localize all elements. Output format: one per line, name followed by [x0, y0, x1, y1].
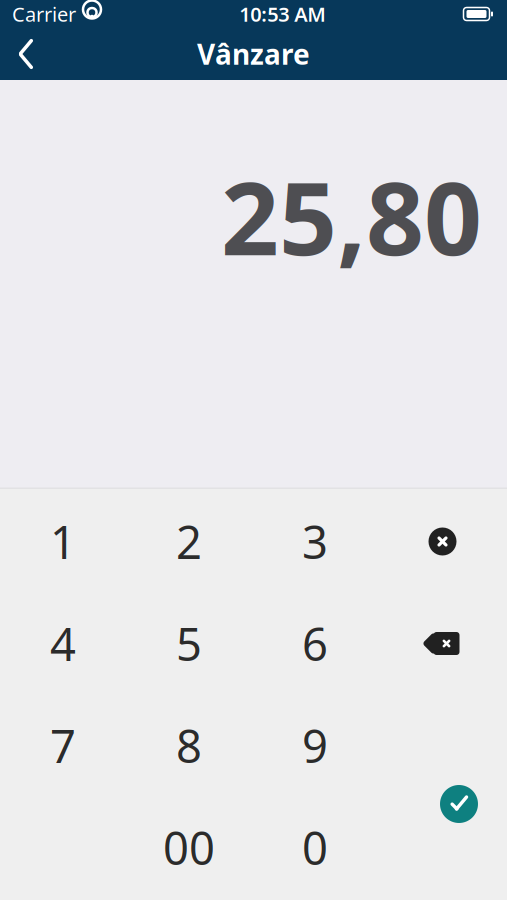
button[interactable]: 00 — [126, 796, 252, 898]
staticText: 00 — [163, 817, 215, 878]
button[interactable]: 8 — [126, 694, 252, 796]
staticText: 9 — [302, 715, 328, 776]
button[interactable]: Back — [0, 28, 52, 80]
staticText: 4 — [50, 613, 76, 674]
staticText: 10:53 AM — [239, 1, 326, 27]
button[interactable]: 6 — [252, 592, 378, 694]
button[interactable]: 0 — [252, 796, 378, 898]
staticText: 25,80 — [221, 149, 482, 283]
staticText: Vânzare — [197, 35, 310, 73]
button[interactable]: Backspace — [394, 610, 490, 676]
staticText: 2 — [176, 511, 202, 572]
button[interactable]: 4 — [0, 592, 126, 694]
button[interactable]: 5 — [126, 592, 252, 694]
staticText: 8 — [176, 715, 202, 776]
button[interactable]: 9 — [252, 694, 378, 796]
button[interactable]: 1 — [0, 490, 126, 592]
button[interactable]: Clear — [394, 508, 490, 574]
button[interactable]: 7 — [0, 694, 126, 796]
staticText: 1 — [50, 511, 76, 572]
button[interactable]: 3 — [252, 490, 378, 592]
button[interactable]: 2 — [126, 490, 252, 592]
staticText: 7 — [50, 715, 76, 776]
staticText: Carrier — [12, 1, 76, 27]
staticText: 0 — [302, 817, 328, 878]
staticText: 5 — [176, 613, 202, 674]
staticText: 3 — [302, 511, 328, 572]
button[interactable]: Confirm — [411, 771, 507, 837]
staticText: 6 — [302, 613, 328, 674]
